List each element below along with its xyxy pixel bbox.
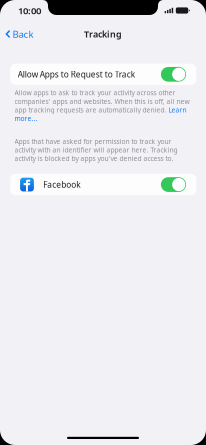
- button[interactable]: Back: [0, 22, 44, 46]
- staticText: Apps that have asked for permission to t…: [14, 137, 177, 163]
- staticText: Tracking: [84, 28, 122, 40]
- staticText: 10:00: [18, 4, 41, 17]
- staticText: Facebook: [43, 179, 80, 190]
- button[interactable]: Facebook: [10, 174, 196, 195]
- staticText: Back: [13, 27, 34, 41]
- staticText: Allow Apps to Request to Track: [18, 69, 135, 80]
- staticText: Allow apps to ask to track your activity…: [14, 88, 189, 123]
- button[interactable]: Allow Apps to Request to Track: [10, 64, 196, 85]
